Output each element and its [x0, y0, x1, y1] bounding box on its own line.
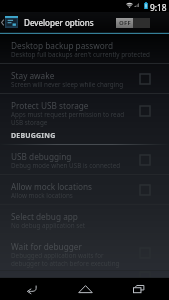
- staticText: Apps must request permission to read: [11, 110, 125, 119]
- staticText: Show App Not Responding dialog: [11, 287, 110, 294]
- staticText: Allow mock locations: [11, 191, 73, 200]
- staticText: No debug application set: [11, 221, 86, 230]
- staticText: USB storage: [11, 118, 48, 127]
- staticText: OFF: [119, 19, 131, 27]
- button[interactable]: Desktop backup password: [0, 34, 169, 64]
- button[interactable]: Protect USB storage: [0, 94, 169, 128]
- button[interactable]: Select debug app: [0, 205, 169, 235]
- staticText: Developer options: [24, 17, 94, 28]
- staticText: Allow mock locations: [11, 181, 93, 192]
- staticText: Debugged application waits for: [11, 251, 104, 260]
- staticText: Desktop full backups aren't currently pr…: [11, 50, 150, 59]
- staticText: Debug mode when USB is connected: [11, 161, 121, 170]
- button[interactable]: Back: [9, 278, 53, 300]
- staticText: Select debug app: [11, 211, 78, 222]
- staticText: DEBUGGING: [11, 131, 56, 141]
- button[interactable]: Wait for debugger: [0, 235, 169, 271]
- staticText: USB debugging: [11, 151, 72, 162]
- button[interactable]: Recent apps: [116, 278, 160, 300]
- staticText: Show all ANRs: [11, 277, 66, 284]
- staticText: Stay awake: [11, 70, 55, 81]
- staticText: Protect USB storage: [11, 100, 89, 111]
- staticText: debugger to attach before executing: [11, 259, 120, 268]
- button[interactable]: Home: [63, 278, 107, 300]
- button[interactable]: Developer options on off switch: [110, 12, 157, 32]
- button[interactable]: Navigate up: [0, 12, 22, 32]
- staticText: Wait for debugger: [11, 241, 82, 252]
- button[interactable]: USB debugging: [0, 145, 169, 175]
- button[interactable]: Stay awake: [0, 64, 169, 94]
- staticText: 9:18: [150, 2, 167, 13]
- staticText: Screen will never sleep while charging: [11, 80, 124, 89]
- button[interactable]: Allow mock locations: [0, 175, 169, 205]
- staticText: Desktop backup password: [11, 40, 114, 51]
